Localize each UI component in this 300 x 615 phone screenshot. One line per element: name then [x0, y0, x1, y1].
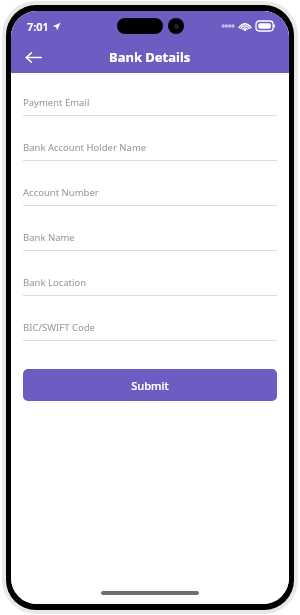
button[interactable]: Bank Account Holder Name	[23, 134, 277, 161]
staticText: Account Number	[23, 186, 99, 199]
button[interactable]: Submit	[23, 369, 277, 401]
staticText: Bank Details	[109, 48, 191, 66]
button[interactable]: Bank Name	[23, 224, 277, 251]
staticText: BIC/SWIFT Code	[23, 321, 95, 334]
staticText: Bank Name	[23, 231, 75, 244]
staticText: 7:01	[27, 19, 49, 34]
staticText: Payment Email	[23, 96, 90, 109]
button[interactable]: Back	[17, 41, 49, 73]
staticText: Submit	[131, 378, 169, 393]
button[interactable]: BIC/SWIFT Code	[23, 314, 277, 341]
button[interactable]: Bank Location	[23, 269, 277, 296]
staticText: Bank Location	[23, 276, 87, 289]
button[interactable]: Account Number	[23, 179, 277, 206]
staticText: Bank Account Holder Name	[23, 141, 147, 154]
button[interactable]: Payment Email	[23, 89, 277, 116]
